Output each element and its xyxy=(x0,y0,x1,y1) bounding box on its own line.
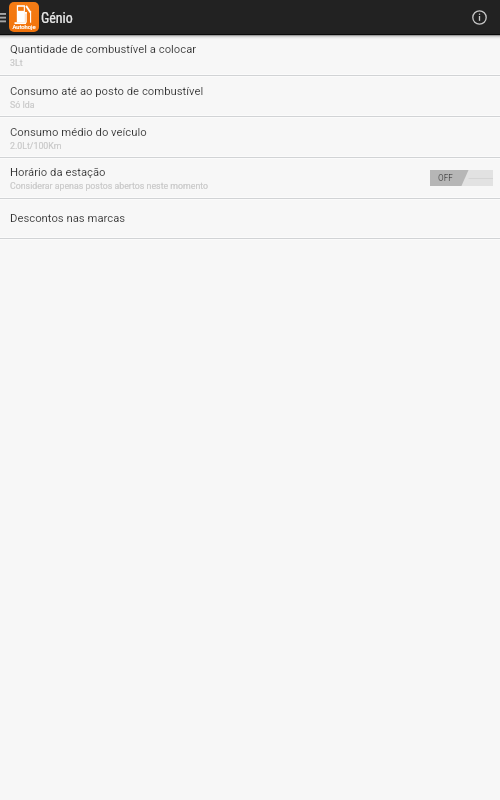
staticText: Consumo até ao posto de combustível xyxy=(10,85,204,98)
button[interactable]: Info xyxy=(468,6,490,28)
staticText: 2.0Lt/100Km xyxy=(10,141,62,151)
button[interactable]: Horário da estação toggle, off xyxy=(430,170,493,186)
button[interactable]: Consumo até ao posto de combustível xyxy=(0,77,500,118)
button[interactable]: Horário da estação xyxy=(0,159,500,200)
staticText: 3Lt xyxy=(10,58,23,68)
staticText: Autohoje xyxy=(12,24,36,31)
button[interactable]: Consumo médio do veículo xyxy=(0,118,500,159)
button[interactable]: Open navigation drawer xyxy=(0,6,6,30)
staticText: Quantidade de combustível a colocar xyxy=(10,43,197,56)
staticText: Descontos nas marcas xyxy=(10,212,126,225)
button[interactable]: Descontos nas marcas xyxy=(0,200,500,240)
staticText: Só Ida xyxy=(10,100,35,110)
button[interactable]: Autohoje xyxy=(9,2,39,32)
button[interactable]: Quantidade de combustível a colocar xyxy=(0,35,500,77)
staticText: Génio xyxy=(41,10,73,26)
staticText: Horário da estação xyxy=(10,166,106,179)
staticText: Consumo médio do veículo xyxy=(10,126,147,139)
staticText: Considerar apenas postos abertos neste m… xyxy=(10,181,209,191)
staticText: OFF xyxy=(438,173,453,183)
